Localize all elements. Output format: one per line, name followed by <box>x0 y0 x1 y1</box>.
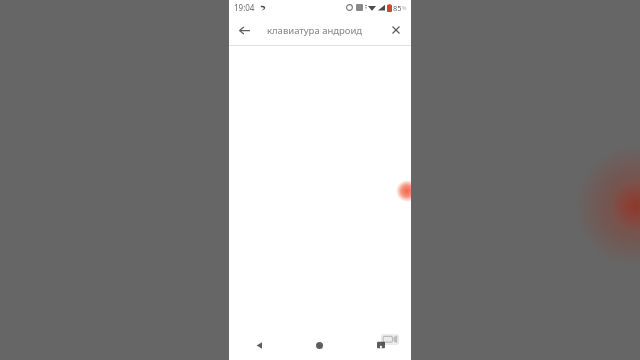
staticText: 85 <box>393 3 402 13</box>
staticText: % <box>402 4 407 11</box>
staticText: клавиатура андроид <box>267 24 363 37</box>
staticText: 19:04 <box>234 2 255 13</box>
button[interactable]: Clear search <box>381 15 411 45</box>
button[interactable]: Back <box>229 330 289 360</box>
button[interactable]: Back <box>229 15 259 45</box>
button[interactable]: Recent apps <box>350 330 411 360</box>
button[interactable]: Home <box>289 330 350 360</box>
button[interactable]: клавиатура андроид <box>259 15 381 45</box>
